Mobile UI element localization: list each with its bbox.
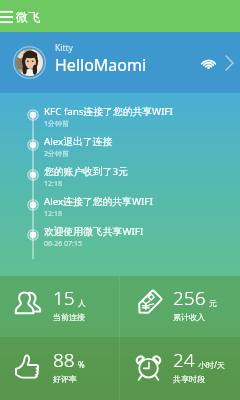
button[interactable]: Alex连接了您的共享WIFI [0, 192, 240, 222]
staticText: 当前连接 [53, 312, 85, 322]
button[interactable]: 您的账户收到了3元 [0, 162, 240, 192]
button[interactable]: Alex退出了连接 [0, 132, 240, 162]
button[interactable]: 88 [0, 337, 119, 400]
staticText: KFC fans连接了您的共享WIFI [44, 105, 173, 118]
button[interactable]: 256 [120, 276, 240, 337]
staticText: 12:18 [44, 209, 62, 219]
button[interactable]: Menu [0, 0, 240, 32]
staticText: 1分钟前 [44, 119, 70, 129]
button[interactable]: KFC fans连接了您的共享WIFI [0, 102, 240, 132]
staticText: Kitty [55, 42, 73, 54]
staticText: 人 [78, 298, 86, 308]
staticText: 88 [53, 347, 75, 373]
staticText: Alex连接了您的共享WIFI [44, 195, 153, 208]
button[interactable]: 24 [120, 337, 240, 400]
staticText: 12:18 [44, 179, 62, 189]
button[interactable]: WiFi [198, 53, 218, 73]
staticText: 06-26 07:15 [44, 239, 82, 249]
staticText: 共享时段 [173, 374, 205, 384]
staticText: 您的账户收到了3元 [44, 165, 128, 178]
staticText: 24 [173, 347, 195, 373]
button[interactable]: 15 [0, 276, 119, 337]
staticText: % [78, 359, 85, 370]
staticText: Alex退出了连接 [44, 135, 113, 148]
staticText: 累计收入 [173, 312, 205, 322]
button[interactable]: 欢迎使用微飞共享WIFI [0, 222, 240, 252]
button[interactable]: Kitty [0, 32, 240, 93]
staticText: 15 [53, 285, 75, 311]
staticText: 微飞 [16, 9, 40, 24]
staticText: 小时/天 [198, 359, 225, 370]
staticText: 256 [173, 285, 206, 311]
staticText: 2分钟前 [44, 149, 70, 159]
staticText: 好评率 [53, 374, 77, 384]
staticText: 元 [209, 298, 217, 308]
other: Menu [0, 10, 13, 24]
staticText: HelloMaomi [55, 54, 147, 76]
staticText: 欢迎使用微飞共享WIFI [44, 225, 144, 238]
